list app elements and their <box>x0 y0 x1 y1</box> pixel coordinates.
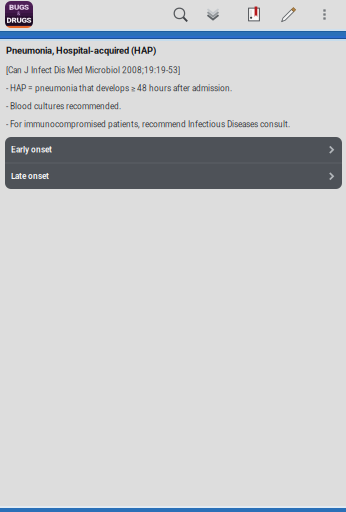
staticText: & <box>17 10 21 17</box>
staticText: Pneumonia, Hospital-acquired (HAP) <box>6 45 156 56</box>
staticText: DRUGS <box>6 15 31 25</box>
staticText: - For immunocompromised patients, recomm… <box>6 120 290 129</box>
button[interactable]: Early onset <box>5 137 342 162</box>
button[interactable]: More options <box>322 0 326 29</box>
staticText: [Can J Infect Dis Med Microbiol 2008;19:… <box>6 66 180 75</box>
button[interactable]: Bugs and Drugs home <box>0 1 33 28</box>
staticText: - HAP = pneumonia that develops ≥ 48 hou… <box>6 84 232 93</box>
staticText: Early onset <box>11 145 52 155</box>
button[interactable]: Expand all sections <box>206 0 220 29</box>
button[interactable]: Search <box>173 0 188 29</box>
button[interactable]: Late onset <box>5 163 342 189</box>
staticText: BUGS <box>9 2 29 12</box>
button[interactable]: Notes <box>280 0 295 29</box>
button[interactable]: Bookmarks <box>247 0 260 29</box>
staticText: - Blood cultures recommended. <box>6 102 121 111</box>
staticText: Late onset <box>11 171 49 181</box>
